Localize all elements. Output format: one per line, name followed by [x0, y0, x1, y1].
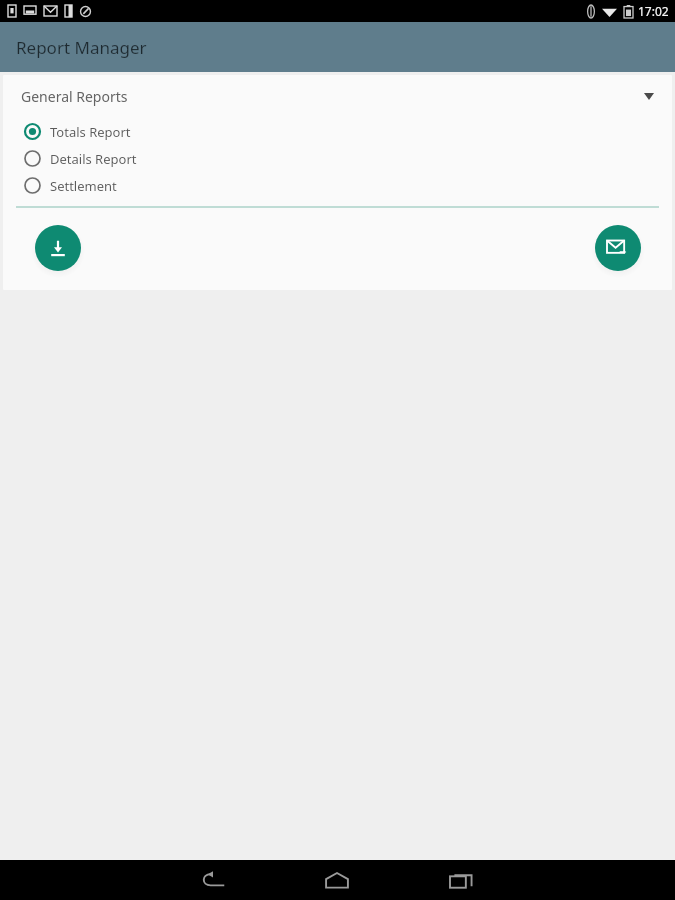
button[interactable]: Email report: [595, 225, 641, 271]
button[interactable]: Download report: [35, 225, 81, 271]
button[interactable]: Settlement: [3, 172, 672, 199]
button[interactable]: Details Report: [3, 145, 672, 172]
button[interactable]: Back: [189, 860, 237, 900]
staticText: Details Report: [50, 150, 137, 168]
staticText: Report Manager: [16, 36, 147, 59]
button[interactable]: General Reports: [3, 75, 672, 118]
staticText: Totals Report: [50, 123, 131, 141]
staticText: Settlement: [50, 177, 117, 195]
staticText: 17:02: [638, 3, 669, 19]
button[interactable]: Totals Report: [3, 118, 672, 145]
button[interactable]: Home: [313, 860, 361, 900]
button[interactable]: Recent apps: [437, 860, 485, 900]
staticText: General Reports: [21, 87, 128, 106]
